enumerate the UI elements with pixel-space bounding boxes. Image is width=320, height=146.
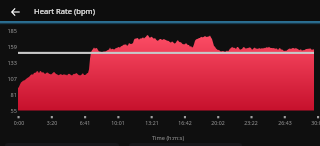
staticText: 10:01: [107, 119, 129, 126]
staticText: 20:02: [207, 119, 229, 126]
staticText: 159: [3, 43, 17, 51]
staticText: 55: [3, 107, 17, 115]
staticText: 23:22: [240, 119, 262, 126]
staticText: 6:41: [74, 119, 96, 126]
staticText: 30:03: [307, 119, 320, 126]
staticText: 107: [3, 75, 17, 83]
staticText: Heart Rate (bpm): [34, 6, 95, 16]
staticText: 16:42: [174, 119, 196, 126]
staticText: 0:00: [8, 119, 30, 126]
staticText: 81: [3, 91, 17, 99]
staticText: Time (h:m:s): [152, 134, 185, 142]
staticText: 26:43: [274, 119, 296, 126]
staticText: 133: [3, 59, 17, 67]
staticText: 3:20: [41, 119, 63, 126]
staticText: 13:21: [141, 119, 163, 126]
button[interactable]: Back: [5, 1, 25, 22]
staticText: 185: [3, 27, 17, 35]
